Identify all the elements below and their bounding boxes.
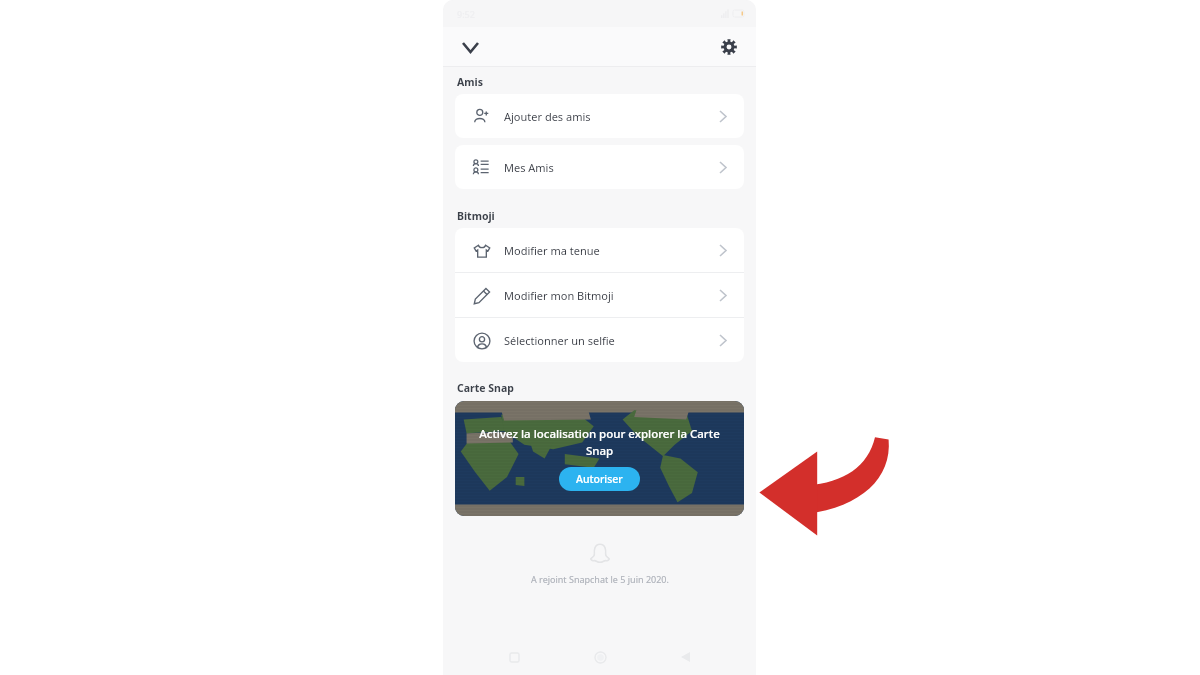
button[interactable]: Modifier mon Bitmoji <box>455 273 744 317</box>
button[interactable]: Ajouter des amis <box>455 94 744 138</box>
button[interactable]: Activez la localisation pour explorer la… <box>455 401 744 516</box>
staticText: Activez la localisation pour explorer la… <box>469 426 730 458</box>
staticText: Ajouter des amis <box>504 109 591 124</box>
button[interactable]: Home <box>585 642 615 672</box>
staticText: Bitmoji <box>457 209 495 223</box>
button[interactable]: Settings <box>716 34 742 60</box>
staticText: Autoriser <box>576 472 623 486</box>
button[interactable]: Autoriser <box>559 467 640 491</box>
staticText: Modifier mon Bitmoji <box>504 288 614 303</box>
staticText: Amis <box>457 75 483 89</box>
staticText: Carte Snap <box>457 381 514 395</box>
staticText: Sélectionner un selfie <box>504 333 615 348</box>
staticText: Mes Amis <box>504 160 554 175</box>
button[interactable]: Collapse <box>457 34 483 60</box>
button[interactable]: Modifier ma tenue <box>455 228 744 272</box>
staticText: Modifier ma tenue <box>504 243 600 258</box>
staticText: A rejoint Snapchat le 5 juin 2020. <box>531 573 669 585</box>
button[interactable]: Mes Amis <box>455 145 744 189</box>
button[interactable]: Sélectionner un selfie <box>455 318 744 362</box>
